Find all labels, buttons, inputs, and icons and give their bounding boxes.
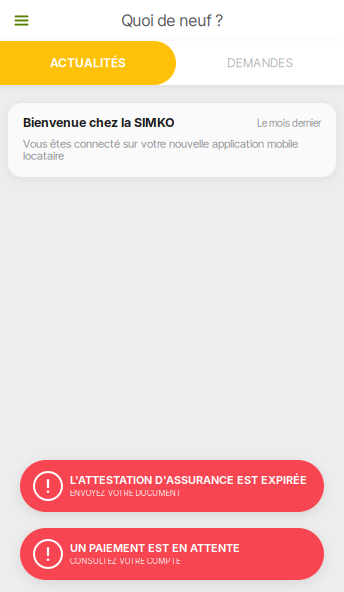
staticText: Bienvenue chez la SIMKO xyxy=(23,115,175,130)
staticText: Le mois dernier xyxy=(257,117,321,129)
button[interactable]: L'ATTESTATION D'ASSURANCE EST EXPIRÉE xyxy=(20,460,324,512)
staticText: ENVOYEZ VOTRE DOCUMENT xyxy=(70,488,181,498)
staticText: L'ATTESTATION D'ASSURANCE EST EXPIRÉE xyxy=(70,473,307,487)
staticText: CONSULTEZ VOTRE COMPTE xyxy=(70,556,180,566)
button[interactable]: Menu xyxy=(0,0,43,41)
staticText: Quoi de neuf ? xyxy=(121,11,222,30)
button[interactable]: UN PAIEMENT EST EN ATTENTE xyxy=(20,528,324,580)
staticText: locataire xyxy=(23,149,64,162)
button[interactable]: DEMANDES xyxy=(176,41,344,85)
staticText: Vous êtes connecté sur votre nouvelle ap… xyxy=(23,137,298,150)
button[interactable]: ACTUALITÉS xyxy=(0,41,176,85)
staticText: UN PAIEMENT EST EN ATTENTE xyxy=(70,541,240,555)
staticText: ACTUALITÉS xyxy=(50,56,126,70)
staticText: DEMANDES xyxy=(227,56,293,70)
